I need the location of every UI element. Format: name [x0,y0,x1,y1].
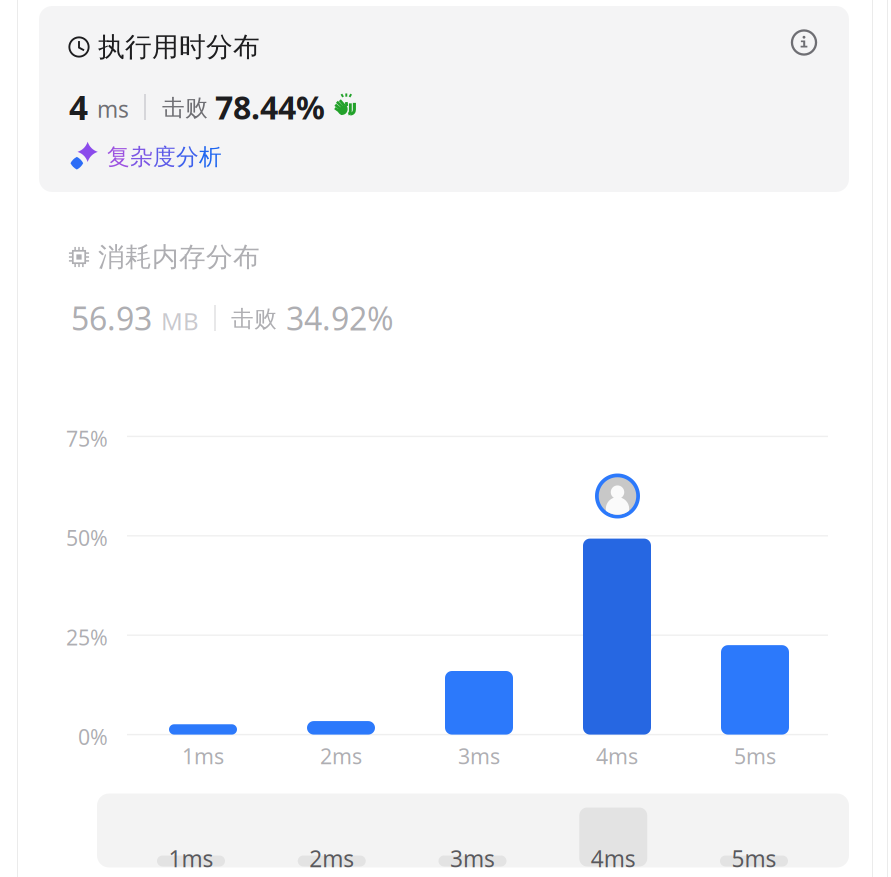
staticText: 5ms [731,843,776,873]
staticText: 4 [69,85,88,129]
staticText: 析 [199,143,222,171]
button[interactable]: 2ms [298,855,366,866]
staticText: 4ms [591,843,636,873]
staticText: 0% [78,722,108,751]
staticText: 执行用时分布 [98,31,260,63]
staticText: 5ms [734,742,776,770]
staticText: 25% [66,623,108,651]
staticText: MB [161,305,199,337]
staticText: ms [97,94,129,124]
staticText: 2ms [320,742,362,770]
button[interactable]: 4ms [579,807,647,866]
staticText: 1ms [182,742,224,770]
staticText: 分 [176,143,199,171]
button[interactable]: 执行用时分布 [39,6,849,192]
staticText: 复 [107,143,130,171]
staticText: 击败 [231,305,277,333]
button[interactable]: 1ms [157,855,225,866]
staticText: 50% [66,524,108,552]
staticText: 4ms [596,742,638,770]
button[interactable]: 5ms [720,855,788,866]
staticText: 击败 [162,94,208,122]
staticText: 3ms [458,742,500,770]
staticText: 3ms [450,843,495,873]
staticText: 杂 [130,143,153,171]
staticText: 78.44% [215,86,325,128]
staticText: 56.93 [71,297,152,339]
staticText: 2ms [309,843,354,873]
button[interactable]: 消耗内存分布 [39,244,849,354]
staticText: 75% [66,424,108,452]
staticText: 34.92% [286,297,394,339]
button[interactable]: 3ms [438,855,506,866]
staticText: 消耗内存分布 [98,241,260,273]
staticText: 1ms [168,843,213,873]
staticText: 度 [153,143,176,171]
